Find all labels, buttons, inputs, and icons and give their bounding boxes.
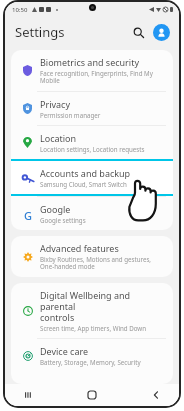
staticText: Settings (15, 23, 65, 41)
staticText: Google settings (40, 216, 86, 224)
staticText: Battery, Storage, Memory, Security (40, 358, 141, 366)
button[interactable]: Advanced features (11, 236, 173, 277)
staticText: Advanced features (40, 242, 119, 254)
button[interactable]: Privacy (11, 92, 173, 125)
staticText: Samsung Cloud, Smart Switch (40, 180, 127, 188)
staticText: Bixby Routines, Motions and gestures, On… (40, 255, 152, 271)
button[interactable]: Home (81, 384, 103, 406)
button[interactable]: Recent apps (17, 384, 39, 406)
staticText: Location (40, 132, 77, 144)
staticText: Google (40, 203, 71, 215)
button[interactable]: Search (128, 22, 148, 42)
staticText: Permission manager (40, 111, 101, 119)
staticText: 10:50 (12, 6, 28, 14)
staticText: G (24, 208, 32, 220)
button[interactable]: Location (11, 126, 173, 159)
staticText: Digital Wellbeing and parental controls (40, 289, 165, 323)
button[interactable]: G (11, 197, 173, 230)
staticText: Device care (40, 345, 89, 357)
staticText: Screen time, App timers, Wind Down (40, 324, 147, 332)
button[interactable]: Digital Wellbeing and parental controls (11, 283, 173, 338)
staticText: Privacy (40, 98, 71, 110)
button[interactable]: Device care (11, 339, 173, 372)
staticText: Face recognition, Fingerprints, Find My … (40, 69, 153, 85)
button[interactable]: Biometrics and security (11, 50, 173, 91)
button[interactable]: Account (153, 24, 170, 41)
button[interactable]: Back (145, 384, 167, 406)
staticText: Accounts and backup (40, 167, 131, 179)
staticText: Location settings, Location requests (40, 145, 145, 153)
staticText: Biometrics and security (40, 56, 140, 68)
button[interactable]: Accounts and backup (11, 161, 173, 194)
